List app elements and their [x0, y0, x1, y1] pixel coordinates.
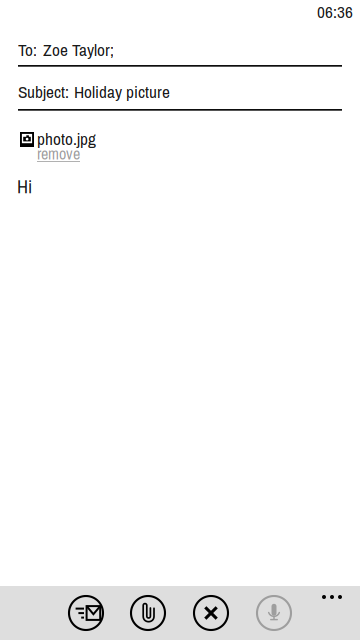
- staticText: To:: [18, 38, 37, 61]
- staticText: Holiday picture: [74, 80, 170, 103]
- button[interactable]: Speak: [249, 588, 299, 638]
- button[interactable]: Send: [61, 588, 111, 638]
- staticText: Zoe Taylor;: [43, 38, 114, 61]
- button[interactable]: remove: [37, 143, 80, 165]
- staticText: 06:36: [317, 0, 353, 23]
- staticText: Hi: [17, 174, 32, 199]
- staticText: remove: [37, 143, 80, 165]
- button[interactable]: More options: [312, 584, 352, 610]
- staticText: photo.jpg: [37, 127, 96, 150]
- button[interactable]: Close: [186, 588, 236, 638]
- staticText: Subject:: [18, 80, 69, 103]
- button[interactable]: Attach: [123, 588, 173, 638]
